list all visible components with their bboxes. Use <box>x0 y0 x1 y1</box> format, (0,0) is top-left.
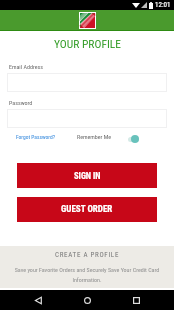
staticText: SIGN IN <box>74 171 101 181</box>
button[interactable] <box>7 109 167 128</box>
staticText: Remember Me <box>77 133 112 140</box>
button[interactable]: Forgot Password? <box>12 132 60 142</box>
staticText: GUEST ORDER <box>61 204 113 215</box>
staticText: 12:01 <box>155 1 171 9</box>
staticText: Password <box>9 99 33 106</box>
staticText: Email Address <box>9 63 43 70</box>
button[interactable]: GUEST ORDER <box>17 197 157 222</box>
button[interactable]: SIGN IN <box>17 163 157 188</box>
button[interactable]: Home <box>77 290 97 310</box>
button[interactable]: Remember Me <box>77 133 112 140</box>
button[interactable]: Remember Me <box>127 133 140 147</box>
staticText: Save your Favorite Orders and Securely S… <box>12 266 162 284</box>
staticText: YOUR PROFILE <box>54 37 121 50</box>
button[interactable]: Recents <box>126 290 146 310</box>
button[interactable]: Back <box>28 290 48 310</box>
staticText: Forgot Password? <box>16 134 56 140</box>
button[interactable] <box>7 73 167 92</box>
staticText: CREATE A PROFILE <box>55 251 120 259</box>
